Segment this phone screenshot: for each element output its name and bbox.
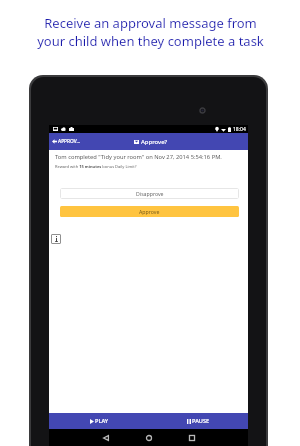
staticText: APPROV... [58, 138, 81, 145]
button[interactable]: Disapprove [60, 188, 239, 199]
button[interactable]: Approve [60, 206, 239, 217]
staticText: Receive an approval message from [44, 14, 257, 32]
staticText: Disapprove [136, 190, 164, 197]
staticText: Approve [139, 208, 160, 215]
button[interactable]: Home [142, 431, 156, 445]
staticText: Approve? [141, 138, 168, 146]
button[interactable]: PAUSE [148, 413, 248, 429]
button[interactable]: Info [51, 234, 61, 244]
button[interactable]: Back [99, 431, 113, 445]
staticText: PAUSE [192, 417, 210, 425]
staticText: Reward with 15 minutes bonus Daily Limit… [55, 164, 137, 169]
staticText: PLAY [95, 417, 108, 425]
button[interactable]: APPROV... [49, 133, 84, 150]
staticText: 18:04 [233, 126, 246, 133]
staticText: your child when they complete a task [37, 32, 264, 50]
staticText: Tom completed "Tidy your room" on Nov 27… [55, 153, 222, 161]
button[interactable]: Recents [185, 431, 199, 445]
button[interactable]: PLAY [49, 413, 148, 429]
